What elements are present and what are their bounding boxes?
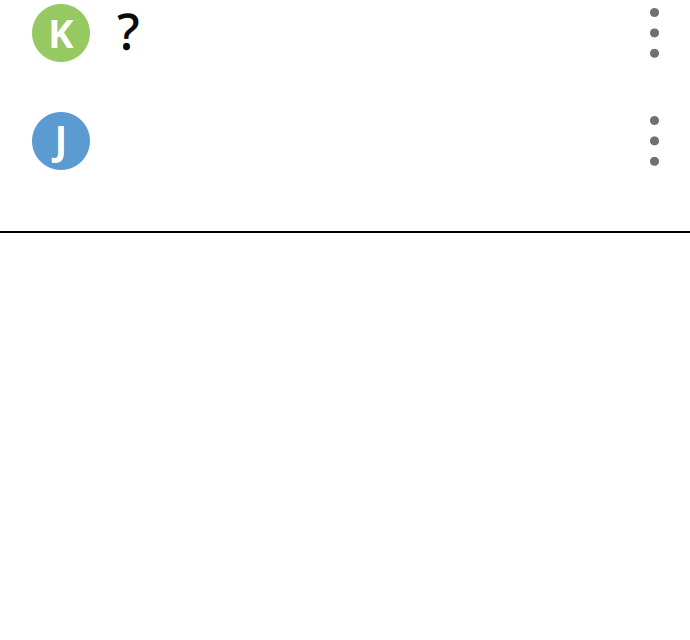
- button[interactable]: More options for J: [632, 108, 690, 184]
- button[interactable]: J: [0, 108, 690, 216]
- button[interactable]: K, ?: [0, 0, 690, 108]
- staticText: J: [54, 113, 67, 165]
- button[interactable]: More options for K: [632, 0, 690, 76]
- staticText: ?: [117, 0, 140, 64]
- staticText: K: [48, 7, 74, 59]
